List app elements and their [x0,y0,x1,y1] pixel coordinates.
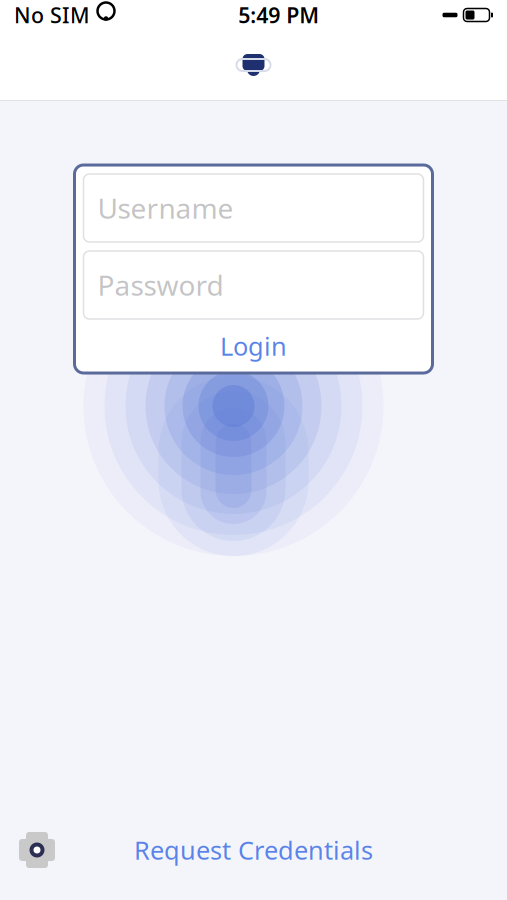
button[interactable]: Settings [0,821,74,879]
staticText: No SIM [14,1,90,29]
staticText: 5:49 PM [238,1,319,29]
button[interactable]: Password [83,251,423,319]
staticText: Login [220,329,287,363]
staticText: Password [97,266,223,304]
button[interactable]: Request Credentials [118,825,389,875]
button[interactable]: Username [83,174,423,242]
button[interactable]: Login [74,319,432,373]
staticText: Request Credentials [134,833,373,867]
staticText: Username [97,189,233,227]
